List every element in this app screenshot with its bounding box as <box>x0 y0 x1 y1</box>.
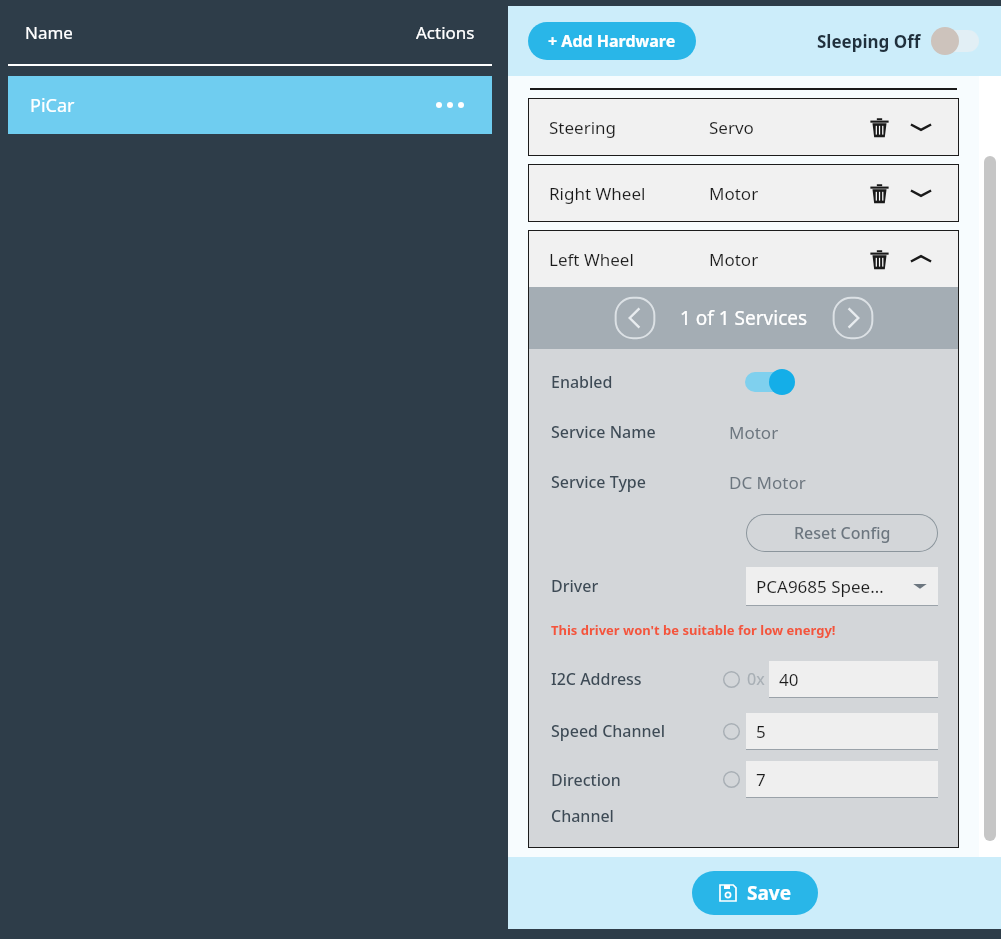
button[interactable]: Help <box>721 769 741 789</box>
staticText: Reset Config <box>794 522 891 544</box>
button[interactable]: More actions <box>430 85 470 125</box>
button[interactable]: 7 <box>746 761 938 798</box>
staticText: Enabled <box>551 371 729 393</box>
staticText: Sleeping Off <box>817 30 921 53</box>
staticText: PCA9685 Spee… <box>756 575 912 598</box>
button[interactable]: Steering <box>529 99 958 155</box>
staticText: I2C Address <box>551 668 721 690</box>
staticText: 0x <box>747 668 765 690</box>
button[interactable]: Reset Config <box>746 514 938 552</box>
staticText: Motor <box>709 248 862 271</box>
staticText: 5 <box>756 720 766 743</box>
staticText: Servo <box>709 116 862 139</box>
staticText: Service Type <box>551 471 729 493</box>
staticText: 1 of 1 Services <box>680 305 808 331</box>
button[interactable]: PCA9685 Spee… <box>746 567 938 606</box>
button[interactable]: Left Wheel <box>529 231 958 287</box>
staticText: Speed Channel <box>551 720 721 742</box>
button[interactable]: Expand <box>904 110 938 144</box>
staticText: This driver won't be suitable for low en… <box>551 621 836 639</box>
button[interactable]: Delete Steering <box>862 110 896 144</box>
staticText: Channel <box>551 805 614 827</box>
staticText: PiCar <box>30 93 430 118</box>
button[interactable]: Expand <box>904 176 938 210</box>
staticText: Name <box>25 21 416 44</box>
button[interactable]: Right Wheel <box>529 165 958 221</box>
staticText: Driver <box>551 575 729 597</box>
staticText: + Add Hardware <box>548 30 676 52</box>
staticText: 7 <box>756 768 766 791</box>
staticText: DC Motor <box>729 471 806 494</box>
staticText: Actions <box>416 21 475 44</box>
staticText: Save <box>747 880 792 906</box>
button[interactable]: Delete Right Wheel <box>862 176 896 210</box>
button[interactable]: Help <box>721 721 741 741</box>
button[interactable]: Previous service <box>612 295 658 341</box>
staticText: Service Name <box>551 421 729 443</box>
staticText: Motor <box>729 421 779 444</box>
button[interactable]: PiCar <box>8 76 492 134</box>
button[interactable]: Next service <box>830 295 876 341</box>
button[interactable]: 5 <box>746 713 938 750</box>
button[interactable]: Enabled toggle <box>743 369 799 395</box>
button[interactable]: + Add Hardware <box>528 22 696 60</box>
staticText: Motor <box>709 182 862 205</box>
button[interactable]: Delete Left Wheel <box>862 242 896 276</box>
button[interactable]: Sleeping toggle <box>931 27 983 55</box>
button[interactable]: 40 <box>769 661 938 698</box>
staticText: 40 <box>779 668 799 691</box>
button[interactable]: Collapse <box>904 242 938 276</box>
staticText: Steering <box>549 116 709 139</box>
staticText: Right Wheel <box>549 182 709 205</box>
staticText: Left Wheel <box>549 248 709 271</box>
button[interactable]: Save <box>692 871 818 915</box>
staticText: Direction <box>551 769 621 791</box>
button[interactable]: Help <box>721 669 741 689</box>
